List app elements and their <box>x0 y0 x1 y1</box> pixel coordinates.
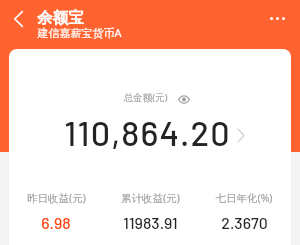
button[interactable]: More options <box>262 4 292 33</box>
staticText: 余额宝 <box>37 8 84 28</box>
button[interactable]: Back <box>5 5 32 33</box>
button[interactable]: 昨日收益(元) <box>9 191 103 232</box>
staticText: 110,864.20 <box>64 112 231 152</box>
staticText: 昨日收益(元) <box>27 191 86 205</box>
staticText: 6.98 <box>41 213 71 232</box>
staticText: 建信嘉薪宝货币A <box>37 25 122 40</box>
staticText: 总金额(元) <box>123 91 168 104</box>
staticText: 累计收益(元) <box>121 191 180 205</box>
button[interactable]: 累计收益(元) <box>103 191 197 232</box>
button[interactable]: 110,864.20 <box>9 112 291 152</box>
button[interactable]: 七日年化(%) <box>197 191 291 232</box>
staticText: 11983.91 <box>123 213 178 232</box>
staticText: 2.3670 <box>221 213 268 232</box>
staticText: 七日年化(%) <box>215 191 273 205</box>
